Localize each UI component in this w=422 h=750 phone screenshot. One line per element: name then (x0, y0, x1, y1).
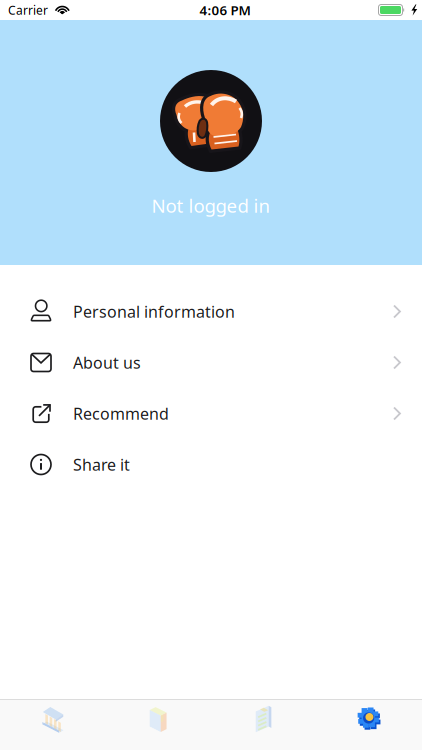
staticText: Recommend (73, 403, 169, 424)
button[interactable]: About us (0, 337, 422, 388)
button[interactable]: Share it (0, 439, 422, 490)
staticText: Share it (73, 454, 130, 475)
staticText: 4:06 PM (199, 1, 250, 19)
staticText: Not logged in (151, 193, 270, 218)
button[interactable]: Recommend (0, 388, 422, 439)
button[interactable]: Gym (0, 705, 105, 750)
staticText: About us (73, 352, 141, 373)
button[interactable]: Notes (211, 705, 316, 750)
button[interactable]: Library (105, 705, 211, 750)
button[interactable]: Personal information (0, 286, 422, 337)
staticText: Carrier (8, 2, 48, 18)
staticText: Personal information (73, 301, 235, 322)
button[interactable]: Settings (316, 705, 422, 750)
